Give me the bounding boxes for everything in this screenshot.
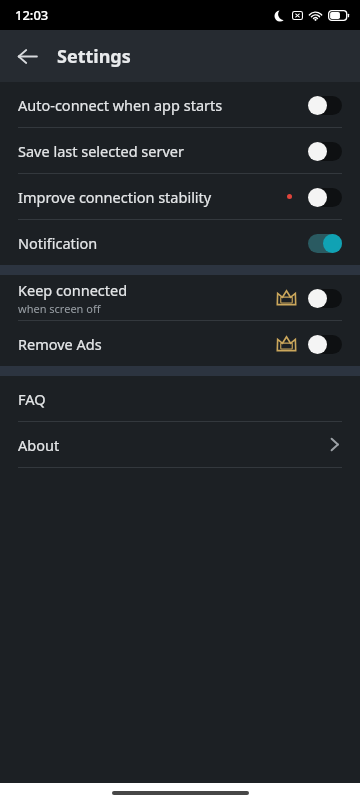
button[interactable]: Switch off xyxy=(303,137,347,165)
staticText: Remove Ads xyxy=(18,334,102,354)
staticText: Improve connection stability xyxy=(18,187,212,207)
staticText: Keep connected xyxy=(18,280,128,300)
staticText: 12:03 xyxy=(15,6,49,24)
button[interactable]: Keep connected xyxy=(0,275,360,320)
staticText: Settings xyxy=(57,44,131,69)
button[interactable]: Back xyxy=(4,33,50,79)
staticText: FAQ xyxy=(18,389,343,409)
button[interactable]: Notification xyxy=(0,220,360,265)
button[interactable]: Auto-connect when app starts xyxy=(0,82,360,127)
button[interactable]: Switch off xyxy=(303,91,347,119)
button[interactable]: Save last selected server xyxy=(0,128,360,173)
staticText: Auto-connect when app starts xyxy=(18,95,223,115)
button[interactable]: Switch off xyxy=(303,284,347,312)
button[interactable]: About xyxy=(0,422,360,467)
staticText: Save last selected server xyxy=(18,141,184,161)
staticText: About xyxy=(18,435,326,455)
staticText: Notification xyxy=(18,233,98,253)
button[interactable]: FAQ xyxy=(0,376,360,421)
button[interactable]: Switch on xyxy=(303,229,347,257)
button[interactable]: Remove Ads xyxy=(0,321,360,366)
button[interactable]: Improve connection stability xyxy=(0,174,360,219)
button[interactable]: Switch off xyxy=(303,330,347,358)
button[interactable]: Switch off xyxy=(303,183,347,211)
staticText: when screen off xyxy=(18,301,101,316)
